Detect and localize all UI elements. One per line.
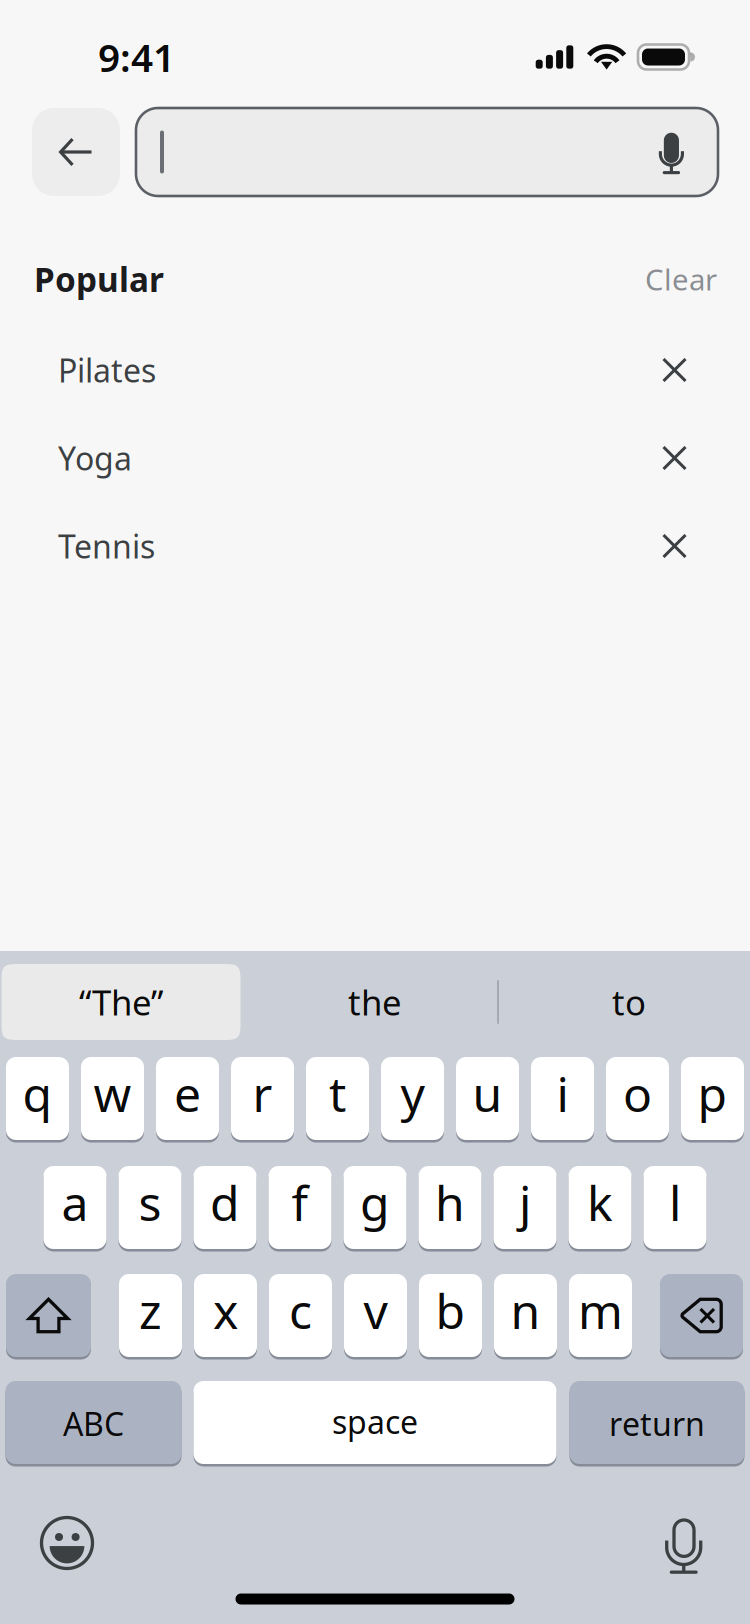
staticText: Yoga <box>58 437 132 479</box>
staticText: k <box>587 1171 613 1234</box>
staticText: j <box>519 1171 531 1234</box>
button[interactable]: h <box>418 1166 481 1249</box>
staticText: return <box>609 1402 705 1445</box>
button[interactable]: g <box>343 1166 406 1249</box>
button[interactable]: space <box>193 1381 556 1464</box>
staticText: a <box>61 1171 88 1234</box>
button[interactable]: b <box>419 1274 482 1357</box>
button[interactable]: n <box>494 1274 557 1357</box>
button[interactable]: Emoji keyboard <box>39 1515 95 1571</box>
staticText: w <box>93 1062 131 1125</box>
staticText: t <box>329 1062 346 1125</box>
button[interactable]: Back <box>32 108 120 196</box>
button[interactable]: Clear <box>645 249 717 309</box>
button[interactable]: i <box>531 1057 594 1140</box>
staticText: m <box>578 1279 623 1342</box>
staticText: Popular <box>34 257 164 301</box>
button[interactable]: k <box>568 1166 631 1249</box>
button[interactable]: t <box>306 1057 369 1140</box>
button[interactable]: l <box>643 1166 706 1249</box>
staticText: r <box>252 1062 272 1125</box>
button[interactable] <box>136 108 718 196</box>
button[interactable]: f <box>268 1166 331 1249</box>
button[interactable]: Dictation <box>665 1516 703 1570</box>
staticText: y <box>400 1062 424 1125</box>
button[interactable]: the <box>295 964 455 1040</box>
button[interactable]: y <box>381 1057 444 1140</box>
staticText: h <box>435 1171 465 1234</box>
staticText: b <box>435 1279 465 1342</box>
staticText: 9:41 <box>98 31 175 83</box>
button[interactable]: x <box>194 1274 257 1357</box>
staticText: n <box>510 1279 540 1342</box>
button[interactable]: m <box>569 1274 632 1357</box>
button[interactable]: v <box>344 1274 407 1357</box>
button[interactable]: Shift <box>6 1274 91 1357</box>
button[interactable]: Pilates <box>0 326 750 414</box>
button[interactable]: to <box>549 964 709 1040</box>
staticText: “The” <box>79 979 163 1025</box>
button[interactable]: o <box>606 1057 669 1140</box>
staticText: Pilates <box>58 349 156 391</box>
button[interactable]: u <box>456 1057 519 1140</box>
staticText: space <box>332 1400 418 1443</box>
staticText: x <box>213 1279 238 1342</box>
button[interactable]: d <box>193 1166 256 1249</box>
button[interactable]: q <box>6 1057 69 1140</box>
button[interactable]: r <box>231 1057 294 1140</box>
staticText: Tennis <box>58 525 155 567</box>
staticText: c <box>289 1279 312 1342</box>
button[interactable]: Yoga <box>0 414 750 502</box>
button[interactable]: return <box>569 1381 744 1464</box>
staticText: Clear <box>645 259 717 298</box>
button[interactable]: s <box>118 1166 181 1249</box>
staticText: z <box>139 1279 162 1342</box>
button[interactable]: “The” <box>1 964 240 1040</box>
staticText: to <box>612 979 646 1025</box>
staticText: e <box>174 1062 201 1125</box>
button[interactable]: e <box>156 1057 219 1140</box>
button[interactable]: p <box>681 1057 744 1140</box>
staticText: p <box>697 1062 727 1125</box>
staticText: u <box>472 1062 502 1125</box>
button[interactable]: z <box>119 1274 182 1357</box>
button[interactable]: a <box>43 1166 106 1249</box>
staticText: the <box>348 979 402 1025</box>
staticText: ABC <box>63 1402 124 1445</box>
staticText: f <box>291 1171 308 1234</box>
staticText: d <box>210 1171 240 1234</box>
staticText: v <box>363 1279 387 1342</box>
button[interactable]: j <box>493 1166 556 1249</box>
button[interactable]: ABC <box>5 1381 181 1464</box>
button[interactable]: Delete <box>660 1274 743 1357</box>
staticText: g <box>360 1171 390 1234</box>
staticText: s <box>138 1171 161 1234</box>
staticText: q <box>22 1062 52 1125</box>
button[interactable]: w <box>81 1057 144 1140</box>
staticText: l <box>669 1171 681 1234</box>
button[interactable]: Tennis <box>0 502 750 590</box>
button[interactable]: c <box>269 1274 332 1357</box>
staticText: i <box>556 1062 568 1125</box>
staticText: o <box>623 1062 652 1125</box>
